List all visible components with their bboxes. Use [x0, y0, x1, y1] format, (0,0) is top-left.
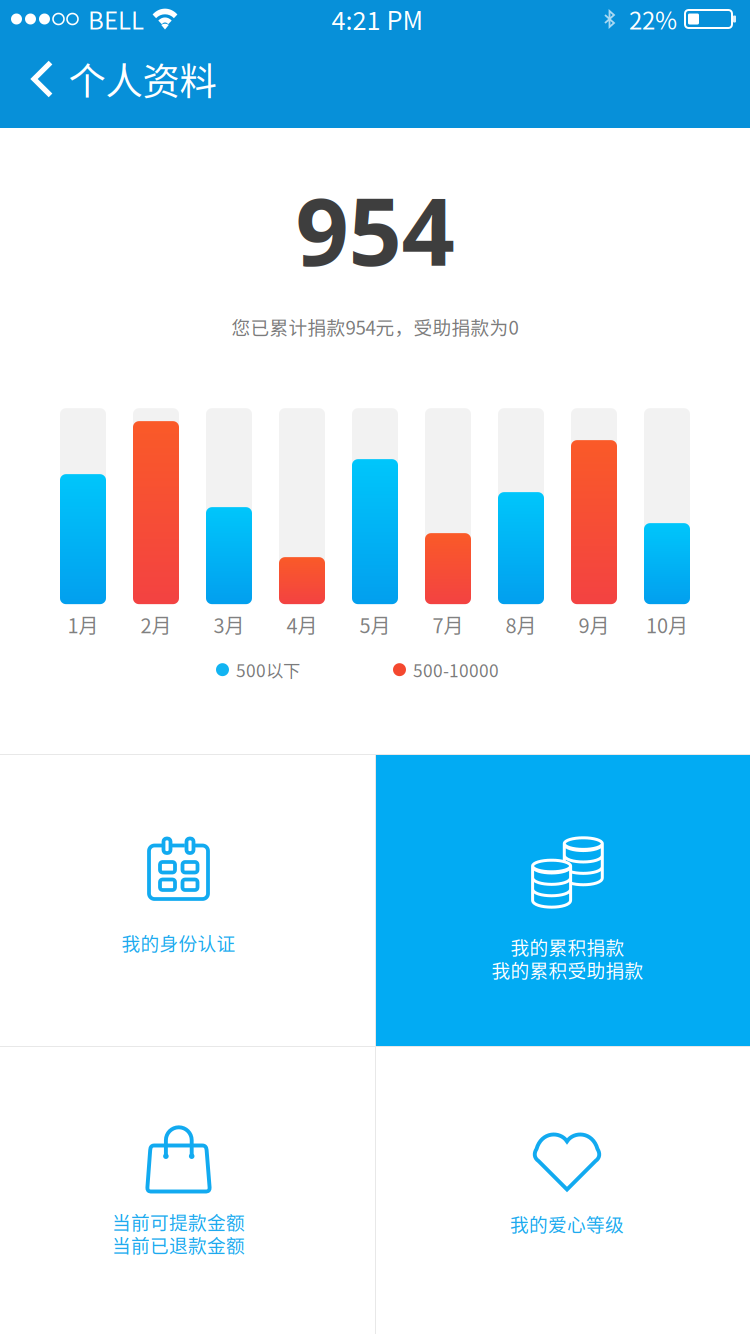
- staticText: 当前可提款金额: [112, 1208, 245, 1235]
- staticText: 4:21 PM: [331, 1, 423, 37]
- staticText: 7月: [432, 610, 463, 639]
- staticText: 我的累积受助捐款: [491, 956, 643, 983]
- staticText: 我的爱心等级: [510, 1210, 624, 1237]
- staticText: 1月: [67, 610, 98, 639]
- button[interactable]: 我的累积捐款: [376, 755, 750, 1046]
- staticText: 8月: [505, 610, 536, 639]
- button[interactable]: 我的爱心等级: [376, 1047, 750, 1334]
- staticText: 我的累积捐款: [510, 933, 624, 960]
- staticText: 500以下: [236, 657, 300, 682]
- staticText: 4月: [286, 610, 317, 639]
- button[interactable]: 返回 个人资料: [0, 34, 238, 124]
- staticText: 500-10000: [413, 657, 499, 682]
- staticText: 5月: [359, 610, 390, 639]
- staticText: 3月: [213, 610, 244, 639]
- staticText: 9月: [578, 610, 609, 639]
- staticText: 2月: [140, 610, 171, 639]
- staticText: 954: [295, 166, 454, 293]
- staticText: 您已累计捐款954元，受助捐款为0: [231, 313, 518, 340]
- staticText: 22%: [629, 2, 677, 36]
- staticText: BELL: [88, 2, 144, 36]
- button[interactable]: 当前可提款金额: [0, 1047, 375, 1334]
- staticText: 10月: [646, 610, 688, 639]
- staticText: 我的身份认证: [121, 929, 235, 956]
- staticText: 当前已退款金额: [112, 1231, 245, 1258]
- staticText: 个人资料: [68, 52, 216, 106]
- button[interactable]: 我的身份认证: [0, 755, 375, 1046]
